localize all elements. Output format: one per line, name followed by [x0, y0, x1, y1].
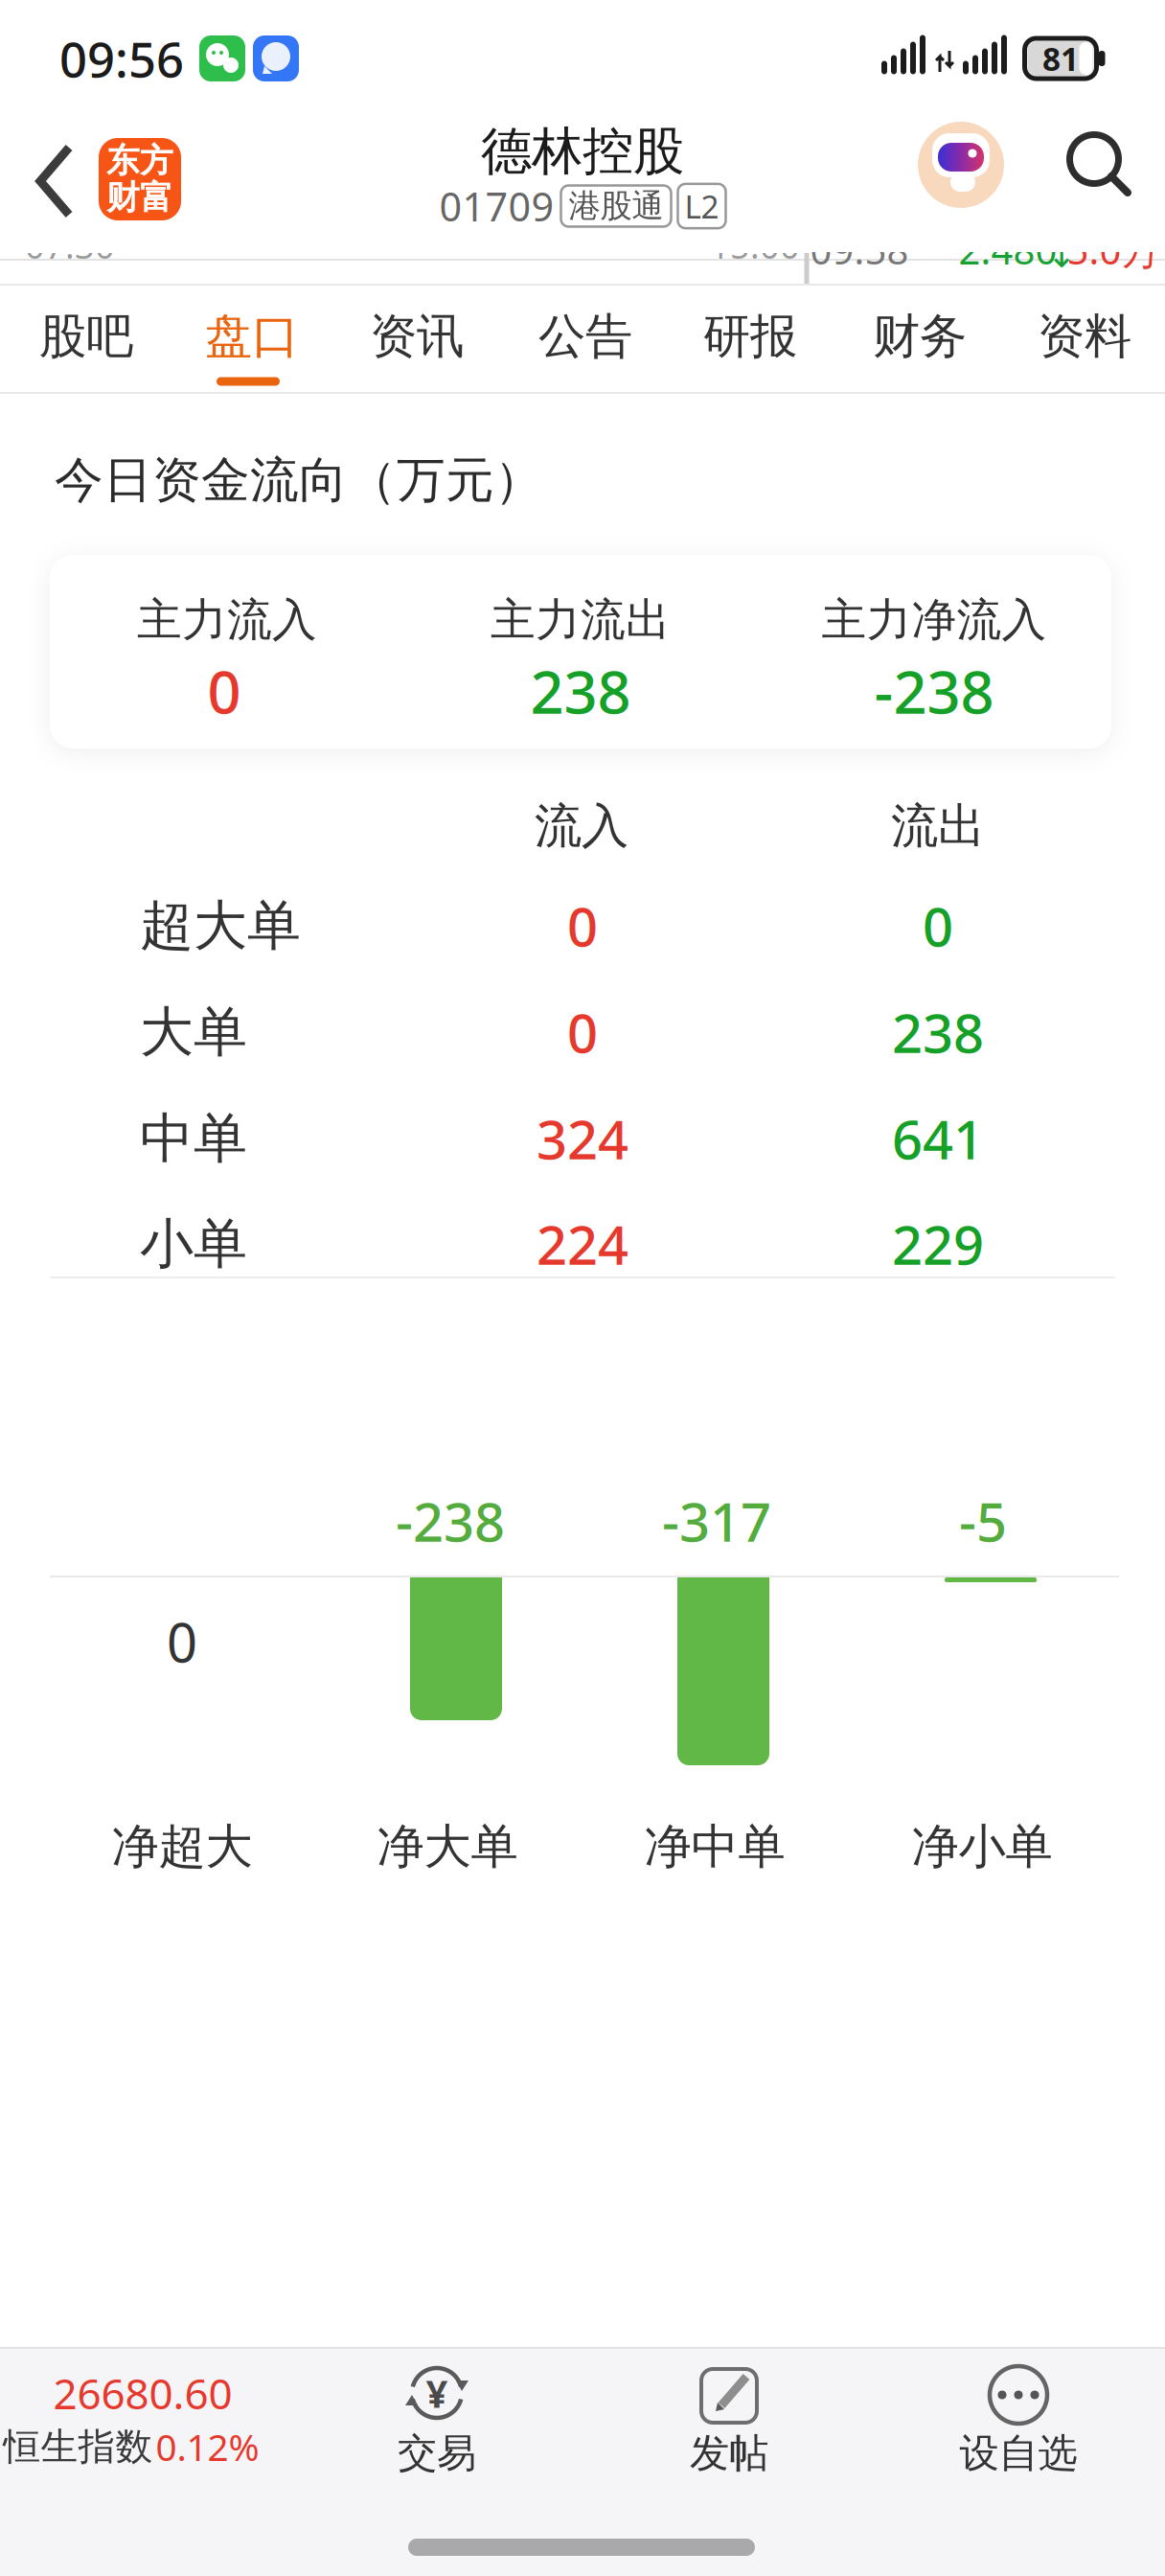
staticText: 恒生指数: [3, 2424, 153, 2469]
staticText: 09:58: [810, 224, 909, 275]
staticText: -238: [874, 652, 994, 730]
staticText: 德林控股: [481, 120, 684, 183]
staticText: 小单: [140, 1211, 247, 1277]
staticText: 中单: [140, 1106, 247, 1171]
button[interactable]: 资料: [1013, 293, 1156, 379]
staticText: ↓: [1047, 234, 1076, 275]
staticText: 流入: [535, 797, 628, 855]
staticText: 盘口: [205, 307, 299, 365]
staticText: -317: [662, 1485, 771, 1557]
staticText: 研报: [703, 307, 797, 365]
staticText: 主力流出: [491, 593, 671, 647]
staticText: 财富: [106, 177, 173, 218]
staticText: 0: [923, 890, 953, 961]
staticText: 0: [567, 996, 598, 1068]
staticText: 238: [892, 996, 984, 1068]
button[interactable]: 返回: [36, 146, 75, 217]
button[interactable]: 公告: [514, 293, 657, 379]
staticText: 东方: [106, 140, 173, 181]
button[interactable]: 研报: [678, 293, 822, 379]
staticText: 09:56: [59, 26, 184, 91]
button[interactable]: ¥: [341, 2353, 533, 2487]
staticText: 229: [892, 1208, 984, 1280]
staticText: 财务: [873, 307, 967, 365]
staticText: 238: [530, 652, 631, 730]
staticText: -5: [959, 1485, 1007, 1557]
staticText: 港股通: [569, 186, 663, 226]
staticText: 5.0万: [1067, 224, 1160, 275]
staticText: 设自选: [959, 2429, 1077, 2478]
staticText: 净大单: [377, 1818, 518, 1876]
button[interactable]: 资讯: [345, 293, 489, 379]
button[interactable]: AI助手: [918, 122, 1004, 208]
staticText: 超大单: [140, 893, 301, 959]
staticText: 2.480: [959, 224, 1057, 275]
staticText: 01709: [439, 180, 554, 232]
staticText: 07:30: [25, 223, 115, 268]
staticText: 资料: [1038, 307, 1131, 365]
staticText: 公告: [538, 307, 632, 365]
staticText: 股吧: [39, 307, 133, 365]
button[interactable]: 发帖: [633, 2353, 825, 2487]
button[interactable]: 财务: [848, 293, 992, 379]
staticText: ¥: [426, 2367, 448, 2418]
staticText: 大单: [140, 999, 247, 1065]
staticText: 主力流入: [137, 593, 317, 647]
staticText: 净中单: [644, 1818, 785, 1876]
staticText: 发帖: [690, 2429, 768, 2478]
button[interactable]: 股吧: [14, 293, 158, 379]
button[interactable]: 设自选: [923, 2353, 1114, 2487]
button[interactable]: 盘口: [180, 293, 324, 379]
staticText: L2: [685, 185, 719, 227]
staticText: 净超大: [112, 1818, 252, 1876]
staticText: 224: [537, 1208, 628, 1280]
staticText: 净小单: [912, 1818, 1052, 1876]
staticText: 81: [1042, 37, 1079, 80]
staticText: 主力净流入: [822, 593, 1047, 647]
staticText: 324: [537, 1103, 628, 1174]
staticText: 今日资金流向（万元）: [55, 450, 543, 510]
staticText: 0.12%: [156, 2422, 259, 2471]
staticText: 资讯: [370, 307, 464, 365]
staticText: 流出: [891, 797, 985, 855]
staticText: 15:00: [710, 223, 800, 268]
staticText: 26680.60: [53, 2365, 232, 2421]
staticText: 641: [892, 1103, 984, 1174]
staticText: -238: [396, 1485, 505, 1557]
button[interactable]: 26680.60: [0, 2353, 278, 2487]
staticText: 0: [167, 1606, 197, 1677]
staticText: 0: [207, 652, 241, 730]
staticText: 交易: [398, 2429, 476, 2478]
button[interactable]: 搜索: [1066, 131, 1133, 198]
staticText: 0: [567, 890, 598, 961]
